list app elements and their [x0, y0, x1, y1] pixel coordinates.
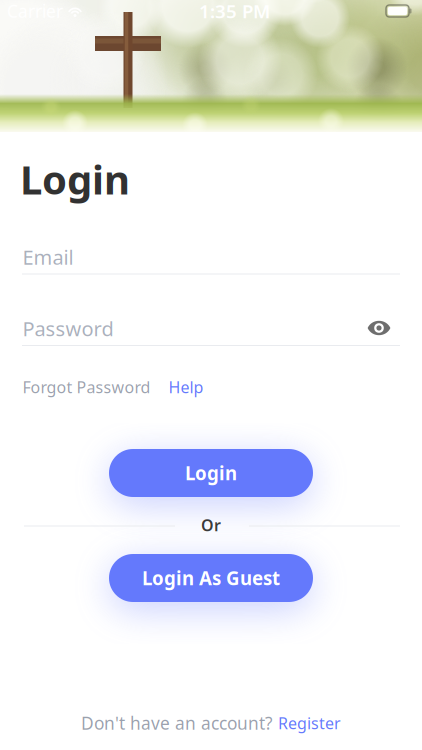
staticText: Login — [20, 152, 130, 205]
button[interactable]: Register — [278, 712, 341, 734]
button[interactable]: Show password — [359, 311, 399, 345]
staticText: Login — [185, 461, 237, 485]
button[interactable]: Forgot Password — [22, 376, 150, 398]
staticText: Help — [168, 376, 203, 398]
staticText: Login As Guest — [142, 566, 280, 590]
staticText: Or — [201, 514, 221, 536]
staticText: Register — [278, 712, 341, 734]
staticText: Password — [22, 315, 113, 342]
staticText: Forgot Password — [22, 376, 150, 398]
button[interactable]: Login As Guest — [109, 554, 313, 602]
button[interactable]: Help — [168, 376, 203, 398]
staticText: 1:35 PM — [199, 0, 270, 23]
staticText: Don't have an account? — [81, 711, 278, 734]
button[interactable]: Login — [109, 449, 313, 497]
staticText: Email — [22, 244, 73, 270]
